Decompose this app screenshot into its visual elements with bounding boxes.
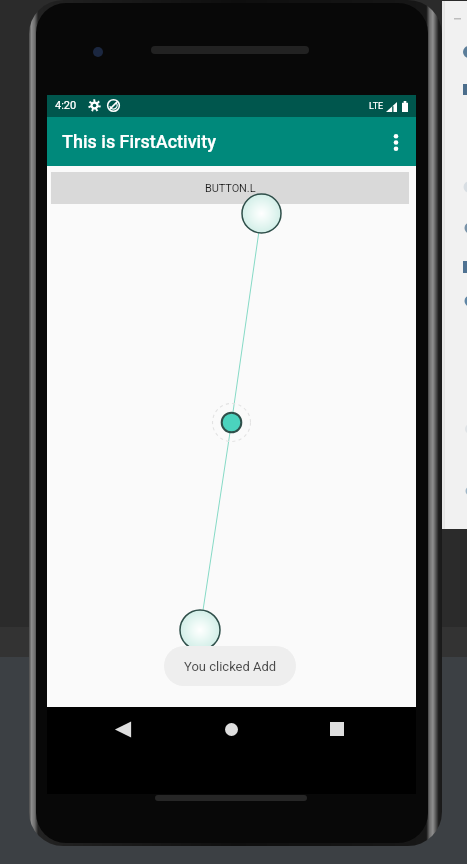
button[interactable]: Back [108, 714, 138, 744]
staticText: You clicked Add [184, 659, 277, 674]
button[interactable]: BUTTON.L [51, 172, 409, 204]
staticText: LTE [369, 101, 384, 112]
staticText: BUTTON.L [205, 182, 256, 195]
button[interactable]: Home [216, 714, 246, 744]
staticText: 4:20 [55, 99, 77, 112]
staticText: This is FirstActivity [62, 131, 216, 152]
button[interactable]: More options [378, 124, 414, 160]
button[interactable]: Recents [322, 714, 352, 744]
